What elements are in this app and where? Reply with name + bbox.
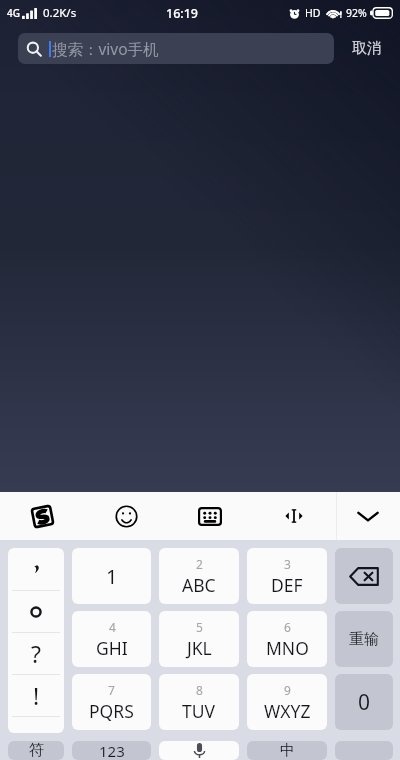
staticText: 符 xyxy=(29,741,44,760)
button[interactable]: 符 xyxy=(8,741,64,760)
button[interactable]: Backspace xyxy=(335,548,393,604)
staticText: 1 xyxy=(106,563,118,590)
button[interactable]: Full stop xyxy=(8,591,64,632)
button[interactable]: 5 xyxy=(159,611,239,667)
staticText: ! xyxy=(33,680,40,711)
staticText: WXYZ xyxy=(264,699,311,723)
button[interactable]: 9 xyxy=(247,674,327,730)
staticText: 9 xyxy=(284,682,291,698)
staticText: ABC xyxy=(182,573,216,597)
button[interactable]: 6 xyxy=(247,611,327,667)
staticText: 8 xyxy=(196,682,203,698)
staticText: JKL xyxy=(187,636,212,660)
staticText: 123 xyxy=(99,741,125,760)
button[interactable]: 3 xyxy=(247,548,327,604)
staticText: PQRS xyxy=(89,699,134,723)
staticText: 中 xyxy=(280,741,295,760)
button[interactable] xyxy=(335,741,393,760)
button[interactable]: ! xyxy=(8,675,64,716)
button[interactable]: Voice input xyxy=(159,741,239,760)
button[interactable]: 取消 xyxy=(344,33,390,64)
staticText: 搜索：vivo手机 xyxy=(52,38,159,59)
button[interactable]: ? xyxy=(8,633,64,674)
staticText: 7 xyxy=(108,682,115,698)
button[interactable]: 中 xyxy=(247,741,327,760)
staticText: MNO xyxy=(266,636,309,660)
button[interactable]: 7 xyxy=(72,674,151,730)
staticText: 0.2K/s xyxy=(43,5,77,21)
button[interactable]: 4 xyxy=(72,611,151,667)
staticText: 6 xyxy=(284,619,291,635)
button[interactable]: 重输 xyxy=(335,611,393,667)
button[interactable]: Comma xyxy=(8,548,64,590)
staticText: 92% xyxy=(346,6,367,20)
staticText: 3 xyxy=(284,556,291,572)
button[interactable]: 8 xyxy=(159,674,239,730)
staticText: DEF xyxy=(271,573,303,597)
staticText: TUV xyxy=(182,699,216,723)
staticText: 4G xyxy=(7,6,20,20)
staticText: 5 xyxy=(196,619,203,635)
staticText: ? xyxy=(31,638,41,669)
staticText: 取消 xyxy=(352,39,382,58)
button[interactable]: Move cursor xyxy=(252,492,336,540)
button[interactable]: Sogou input method xyxy=(0,492,84,540)
other: Search xyxy=(26,41,42,57)
staticText: 16:19 xyxy=(166,5,199,22)
staticText: 0 xyxy=(358,688,371,717)
staticText: GHI xyxy=(96,636,128,660)
button[interactable]: Keyboard layout xyxy=(168,492,252,540)
button[interactable]: 1 xyxy=(72,548,151,604)
button[interactable]: Search xyxy=(18,33,334,64)
button[interactable]: 0 xyxy=(335,674,393,730)
staticText: 4 xyxy=(109,619,116,635)
button[interactable]: Emoji xyxy=(84,492,168,540)
staticText: HD xyxy=(305,6,321,20)
button[interactable]: 2 xyxy=(159,548,239,604)
staticText: 2 xyxy=(196,556,203,572)
button[interactable]: 123 xyxy=(72,741,151,760)
staticText: 重输 xyxy=(349,630,379,649)
button[interactable]: Hide keyboard xyxy=(337,492,399,540)
